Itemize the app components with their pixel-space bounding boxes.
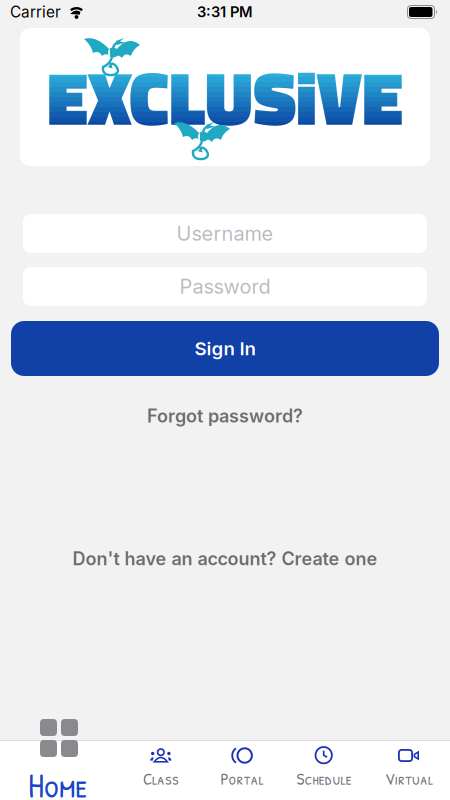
staticText: Password (179, 274, 270, 299)
staticText: Virtual (385, 767, 433, 790)
button[interactable]: Forgot password? (147, 405, 303, 427)
staticText: Sign In (194, 337, 255, 360)
staticText: Username (176, 221, 273, 246)
staticText: Schedule (296, 767, 351, 790)
staticText: Don't have an account? Create one (72, 548, 377, 570)
button[interactable]: Password (23, 267, 427, 306)
button[interactable]: Schedule (280, 740, 368, 800)
button[interactable]: Username (23, 214, 427, 253)
staticText: Portal (220, 767, 263, 790)
staticText: Carrier (10, 3, 61, 21)
button[interactable]: Home (0, 740, 118, 800)
button[interactable]: Virtual (368, 740, 450, 800)
staticText: 3:31 PM (197, 3, 253, 21)
button[interactable]: Don't have an account? Create one (72, 548, 377, 570)
button[interactable]: Sign In (11, 321, 439, 376)
staticText: Class (143, 767, 179, 790)
button[interactable]: Class (118, 740, 204, 800)
staticText: Forgot password? (147, 405, 303, 427)
button[interactable]: Portal (204, 740, 280, 800)
staticText: Home (28, 762, 88, 800)
